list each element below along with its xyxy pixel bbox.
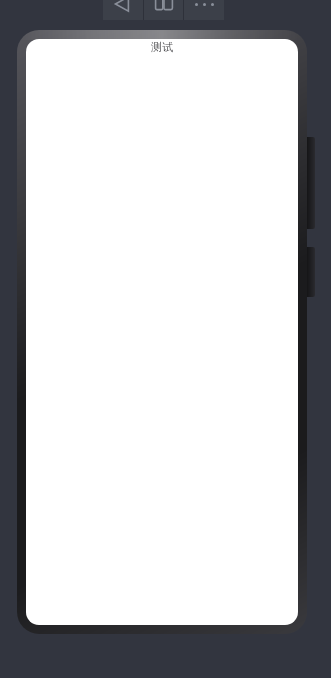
button[interactable]: Fold device [144, 0, 183, 20]
button[interactable]: More options [184, 0, 224, 20]
button[interactable]: Power button [306, 247, 315, 297]
button[interactable]: Volume button [306, 137, 315, 229]
staticText: 测试 [151, 40, 173, 54]
button[interactable]: Back [103, 0, 143, 20]
